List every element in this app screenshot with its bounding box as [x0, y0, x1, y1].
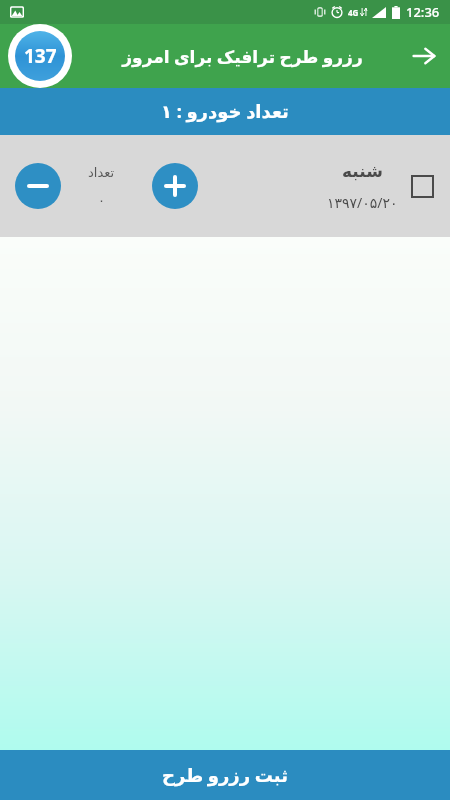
staticText: شنبه [342, 161, 383, 181]
staticText: ۰ [98, 193, 105, 208]
button[interactable]: Increase [152, 163, 198, 209]
button[interactable]: 137 logo [8, 24, 72, 88]
staticText: 4G [348, 7, 359, 18]
staticText: 137 [24, 43, 57, 69]
staticText: رزرو طرح ترافیک برای امروز [122, 45, 363, 68]
staticText: ۱۳۹۷/۰۵/۲۰ [327, 193, 398, 212]
button[interactable]: ثبت رزرو طرح [0, 750, 450, 800]
button[interactable]: Decrease [15, 163, 61, 209]
staticText: تعداد [88, 165, 115, 180]
button[interactable]: Select day [402, 166, 442, 206]
staticText: 12:36 [406, 3, 440, 21]
button[interactable]: Back [398, 30, 450, 82]
staticText: ثبت رزرو طرح [162, 763, 288, 788]
staticText: تعداد خودرو : ۱ [161, 99, 289, 124]
